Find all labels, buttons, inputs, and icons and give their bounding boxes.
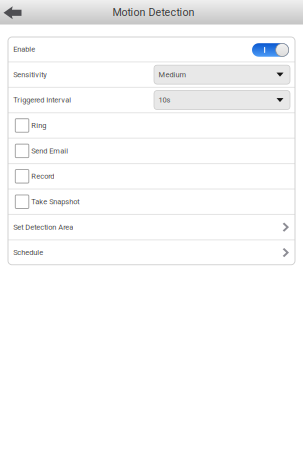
staticText: Medium [158, 70, 186, 79]
button[interactable]: Medium [154, 65, 290, 84]
button[interactable]: Set Detection Area [8, 215, 295, 239]
staticText: Set Detection Area [13, 223, 73, 231]
staticText: Ring [31, 121, 46, 130]
button[interactable]: Take Snapshot [8, 189, 295, 214]
staticText: Enable [13, 45, 35, 53]
button[interactable]: Back [0, 0, 31, 24]
button[interactable]: 10s [154, 91, 290, 110]
staticText: Motion Detection [112, 6, 194, 18]
staticText: Take Snapshot [31, 197, 79, 206]
staticText: Triggered Interval [13, 96, 71, 104]
button[interactable]: Record [8, 164, 295, 188]
button[interactable]: Ring [8, 113, 295, 138]
button[interactable]: Schedule [8, 240, 295, 265]
staticText: Sensitivity [13, 70, 47, 79]
staticText: Record [31, 172, 54, 181]
staticText: Schedule [13, 248, 43, 257]
staticText: Send Email [31, 146, 68, 155]
button[interactable]: Enable motion detection [252, 42, 290, 57]
staticText: 10s [158, 96, 170, 104]
button[interactable]: Send Email [8, 139, 295, 163]
